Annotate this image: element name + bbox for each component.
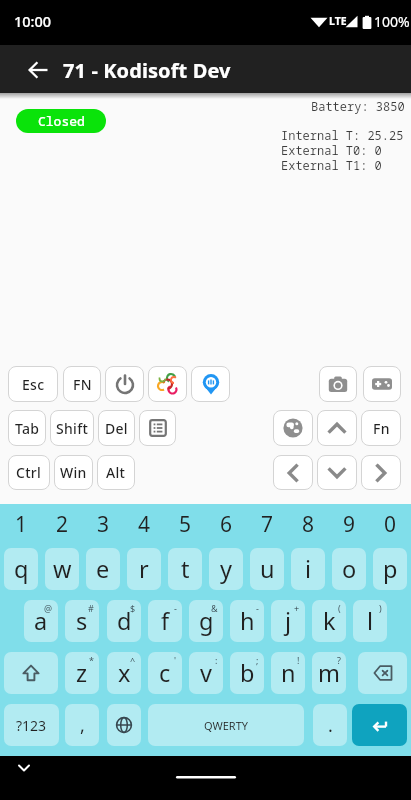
staticText: Battery: 3850 [311, 98, 405, 114]
staticText: ! [297, 654, 300, 666]
staticText: u [260, 553, 275, 585]
staticText: 5 [179, 510, 192, 539]
staticText: l [367, 605, 374, 637]
staticText: ?123 [16, 716, 47, 735]
staticText: m [318, 657, 340, 689]
staticText: - [174, 602, 177, 614]
staticText: p [383, 553, 398, 585]
staticText: QWERTY [204, 718, 249, 733]
staticText: 10:00 [14, 11, 52, 31]
staticText: ? [337, 654, 341, 666]
staticText: r [139, 553, 149, 585]
staticText: $ [130, 602, 136, 614]
staticText: External T0: 0 [281, 142, 382, 158]
staticText: q [14, 553, 29, 585]
staticText: Fn [373, 419, 390, 438]
staticText: b [240, 657, 255, 689]
staticText: 100% [374, 12, 410, 31]
staticText: Closed [38, 112, 85, 130]
staticText: Ctrl [16, 463, 42, 482]
staticText: z [76, 657, 88, 689]
staticText: 4 [138, 510, 151, 539]
staticText: 7 [261, 510, 274, 539]
staticText: 2 [56, 510, 69, 539]
staticText: Alt [106, 463, 126, 482]
staticText: h [240, 605, 255, 637]
staticText: 8 [302, 510, 315, 539]
staticText: ( [338, 602, 341, 614]
staticText: # [88, 602, 94, 614]
staticText: k [323, 605, 336, 637]
staticText: e [96, 553, 110, 585]
staticText: . [328, 713, 333, 738]
staticText: c [159, 657, 171, 689]
staticText: Shift [56, 419, 89, 438]
staticText: ; [256, 654, 259, 666]
staticText: 3 [97, 510, 110, 539]
staticText: j [285, 605, 292, 637]
staticText: n [281, 657, 296, 689]
staticText: a [34, 605, 48, 637]
staticText: Esc [22, 375, 45, 394]
staticText: LTE [329, 14, 347, 28]
staticText: o [342, 553, 357, 585]
staticText: & [211, 602, 218, 614]
staticText: s [76, 605, 88, 637]
staticText: , [80, 713, 85, 738]
staticText: g [199, 605, 214, 637]
staticText: External T1: 0 [281, 157, 382, 173]
staticText: * [89, 654, 94, 666]
staticText: - [256, 602, 259, 614]
staticText: 6 [220, 510, 233, 539]
staticText: ^ [130, 654, 136, 666]
staticText: ' [174, 654, 177, 666]
staticText: : [215, 654, 218, 666]
staticText: 71 - Kodisoft Dev [63, 57, 231, 84]
staticText: 9 [343, 510, 356, 539]
staticText: v [200, 657, 212, 689]
staticText: i [305, 553, 312, 585]
staticText: FN [73, 375, 92, 394]
staticText: Tab [15, 419, 40, 438]
staticText: y [220, 553, 232, 585]
staticText: w [53, 553, 72, 585]
staticText: 0 [384, 510, 397, 539]
staticText: t [181, 553, 190, 585]
staticText: @ [44, 602, 53, 614]
staticText: Internal T: 25.25 [281, 127, 404, 143]
staticText: x [118, 657, 131, 689]
staticText: d [117, 605, 132, 637]
staticText: + [294, 602, 300, 614]
staticText: ) [379, 602, 382, 614]
staticText: 1 [15, 510, 28, 539]
staticText: Del [105, 419, 128, 438]
staticText: f [161, 605, 170, 637]
staticText: Win [60, 463, 87, 482]
